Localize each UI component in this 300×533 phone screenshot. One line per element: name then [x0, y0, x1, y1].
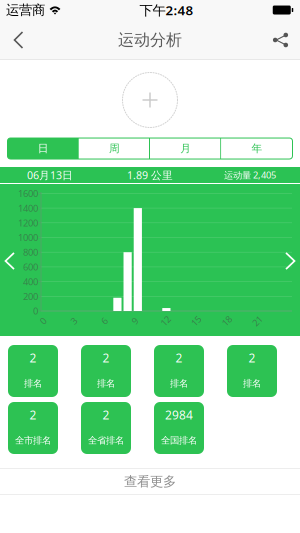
button[interactable]: 2: [8, 345, 58, 397]
button[interactable]: 2: [154, 345, 204, 397]
staticText: 周: [109, 142, 120, 155]
button[interactable]: 日: [7, 138, 79, 159]
staticText: 1600: [18, 187, 38, 200]
staticText: 全国排名: [161, 434, 197, 446]
staticText: 1400: [18, 202, 38, 214]
button[interactable]: 月: [150, 138, 221, 159]
staticText: 全省排名: [88, 434, 124, 446]
staticText: 200: [23, 290, 38, 302]
staticText: 0: [33, 305, 38, 317]
staticText: 2: [102, 350, 109, 366]
staticText: 排名: [24, 377, 42, 389]
button[interactable]: 2: [81, 402, 131, 454]
staticText: 下午2:48: [139, 1, 193, 19]
staticText: 查看更多: [124, 473, 176, 490]
staticText: 全市排名: [15, 434, 51, 446]
button[interactable]: 周: [79, 138, 150, 159]
staticText: 800: [23, 246, 38, 258]
button[interactable]: 2: [8, 402, 58, 454]
staticText: 运动量 2,405: [224, 169, 276, 181]
staticText: 0: [40, 315, 45, 327]
staticText: 12: [160, 315, 170, 327]
staticText: 2: [29, 407, 36, 423]
button[interactable]: 2: [81, 345, 131, 397]
button[interactable]: Back: [0, 20, 37, 60]
button[interactable]: Next: [276, 244, 300, 278]
button[interactable]: 年: [221, 138, 292, 159]
button[interactable]: Add: [122, 72, 178, 128]
staticText: 9: [132, 315, 137, 327]
staticText: 21: [252, 315, 262, 327]
staticText: 年: [251, 142, 262, 155]
staticText: 排名: [243, 377, 261, 389]
staticText: 400: [23, 275, 38, 288]
staticText: 1000: [18, 231, 38, 244]
staticText: 排名: [170, 377, 188, 389]
staticText: 06月13日: [27, 168, 73, 182]
button[interactable]: 2: [227, 345, 277, 397]
staticText: 2984: [165, 407, 193, 423]
staticText: 2: [248, 350, 255, 366]
staticText: 6: [102, 315, 107, 327]
staticText: 运营商: [6, 2, 45, 18]
staticText: 2: [175, 350, 182, 366]
staticText: 18: [222, 315, 232, 327]
staticText: 日: [38, 142, 49, 155]
staticText: 15: [191, 315, 201, 327]
button[interactable]: Share: [261, 20, 300, 60]
staticText: 1.89 公里: [127, 168, 173, 182]
button[interactable]: Previous: [0, 244, 24, 278]
staticText: 2: [29, 350, 36, 366]
staticText: 运动分析: [118, 30, 182, 50]
button[interactable]: 查看更多: [0, 469, 300, 494]
staticText: 排名: [97, 377, 115, 389]
staticText: 月: [180, 142, 191, 155]
staticText: 600: [23, 261, 38, 273]
button[interactable]: 2984: [154, 402, 204, 454]
staticText: 1200: [18, 217, 38, 229]
staticText: 3: [71, 315, 76, 327]
staticText: 2: [102, 407, 109, 423]
